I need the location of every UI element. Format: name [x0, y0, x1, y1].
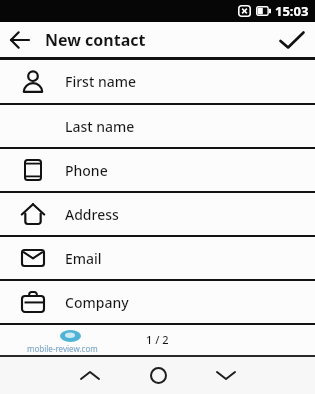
staticText: First name [65, 72, 136, 91]
button[interactable] [0, 22, 40, 57]
button[interactable]: Company [0, 281, 315, 323]
staticText: Last name [65, 117, 135, 136]
button[interactable] [55, 357, 124, 394]
button[interactable]: Address [0, 193, 315, 235]
staticText: Address [65, 205, 119, 224]
button[interactable]: First name [0, 60, 315, 103]
staticText: Company [65, 293, 129, 312]
button[interactable]: Last name [0, 105, 315, 147]
staticText: Phone [65, 161, 108, 180]
button[interactable]: Phone [0, 149, 315, 191]
staticText: Email [65, 249, 102, 268]
button[interactable] [192, 357, 260, 394]
button[interactable] [269, 22, 315, 57]
staticText: 1 / 2 [146, 332, 169, 347]
staticText: New contact [45, 29, 146, 51]
staticText: 15:03 [275, 2, 309, 20]
button[interactable] [124, 357, 192, 394]
button[interactable]: Email [0, 237, 315, 279]
staticText: mobile-review.com [27, 343, 98, 354]
